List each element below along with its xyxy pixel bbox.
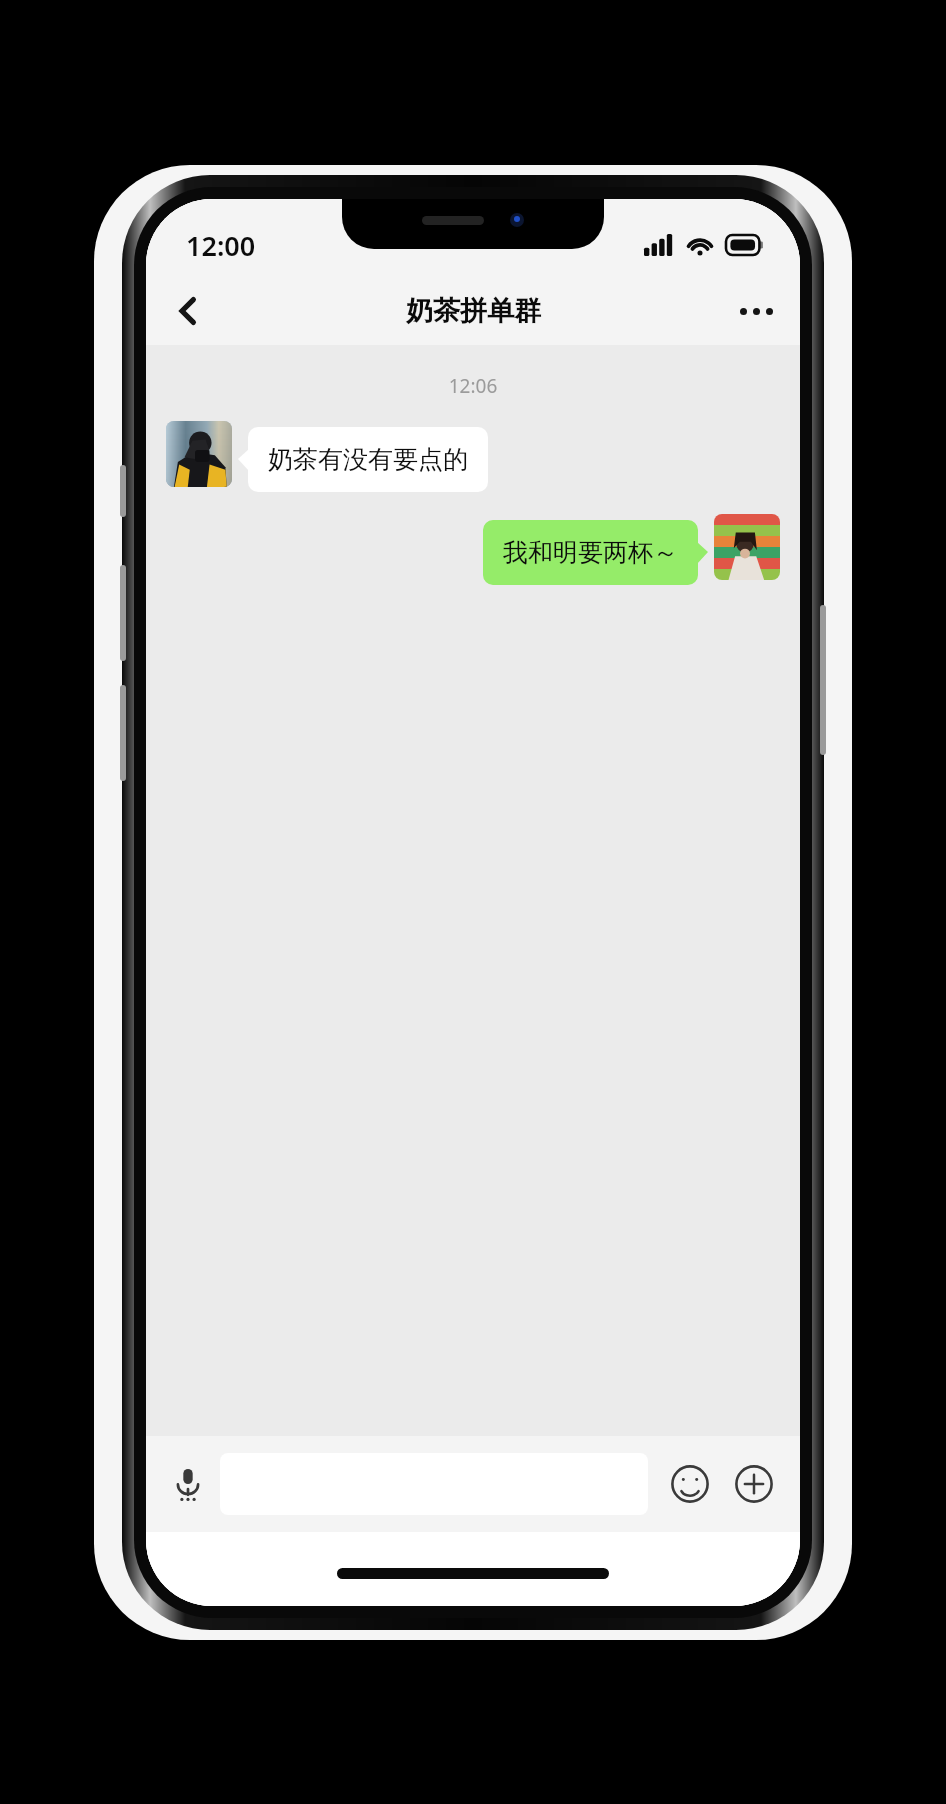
staticText: 12:06 bbox=[146, 373, 800, 399]
button[interactable]: Avatar bbox=[166, 421, 232, 487]
staticText: 奶茶有没有要点的 bbox=[268, 444, 468, 475]
button[interactable]: 奶茶有没有要点的 bbox=[248, 427, 488, 492]
button[interactable]: Back bbox=[158, 281, 218, 341]
staticText: 我和明要两杯～ bbox=[503, 537, 678, 568]
button[interactable]: More options bbox=[726, 281, 786, 341]
button[interactable]: Voice message bbox=[156, 1452, 220, 1516]
staticText: 奶茶拼单群 bbox=[406, 294, 541, 328]
button[interactable]: Emoji bbox=[658, 1452, 722, 1516]
staticText: 12:00 bbox=[186, 227, 256, 264]
button[interactable]: More bbox=[722, 1452, 786, 1516]
button[interactable]: 我和明要两杯～ bbox=[483, 520, 698, 585]
button[interactable]: Avatar bbox=[714, 514, 780, 580]
